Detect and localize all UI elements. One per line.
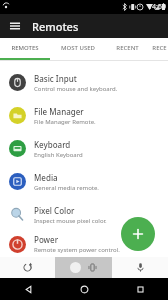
- button[interactable]: Vibrate toggle: [55, 257, 112, 278]
- staticText: MOST USED: [61, 44, 95, 52]
- staticText: Power: [34, 234, 59, 245]
- staticText: Inspect mouse pixel color.: [34, 217, 107, 225]
- staticText: Control mouse and keyboard.: [34, 85, 118, 93]
- button[interactable]: REMOTES: [0, 38, 50, 58]
- button[interactable]: MOST USED: [50, 38, 105, 58]
- button[interactable]: Voice input: [112, 257, 168, 278]
- staticText: 14:59: [148, 2, 166, 12]
- staticText: Keyboard: [34, 139, 71, 150]
- button[interactable]: Home: [56, 278, 112, 300]
- button[interactable]: File Manager: [0, 99, 168, 132]
- button[interactable]: Pixel Color: [0, 198, 168, 231]
- button[interactable]: Back: [0, 278, 56, 300]
- button[interactable]: Open navigation drawer: [5, 16, 25, 36]
- staticText: Basic Input: [34, 73, 77, 84]
- button[interactable]: Refresh: [0, 257, 55, 278]
- button[interactable]: RECENT: [105, 38, 150, 58]
- button[interactable]: Recent apps: [112, 278, 168, 300]
- button[interactable]: RECE: [150, 38, 168, 58]
- button[interactable]: Keyboard: [0, 132, 168, 165]
- staticText: REMOTES: [11, 44, 39, 52]
- staticText: RECENT: [116, 44, 139, 52]
- staticText: RECE: [152, 44, 167, 52]
- staticText: English Keyboard: [34, 151, 83, 159]
- staticText: Pixel Color: [34, 205, 75, 216]
- staticText: General media remote.: [34, 184, 99, 192]
- staticText: Media: [34, 172, 58, 183]
- button[interactable]: Basic Input: [0, 66, 168, 99]
- staticText: File Manager Remote.: [34, 118, 96, 126]
- button[interactable]: Media: [0, 165, 168, 198]
- staticText: File Manager: [34, 106, 84, 117]
- button[interactable]: Add remote: [121, 217, 155, 251]
- staticText: Remote system power control.: [34, 246, 120, 254]
- button[interactable]: Power: [0, 231, 168, 257]
- staticText: Remotes: [32, 19, 79, 34]
